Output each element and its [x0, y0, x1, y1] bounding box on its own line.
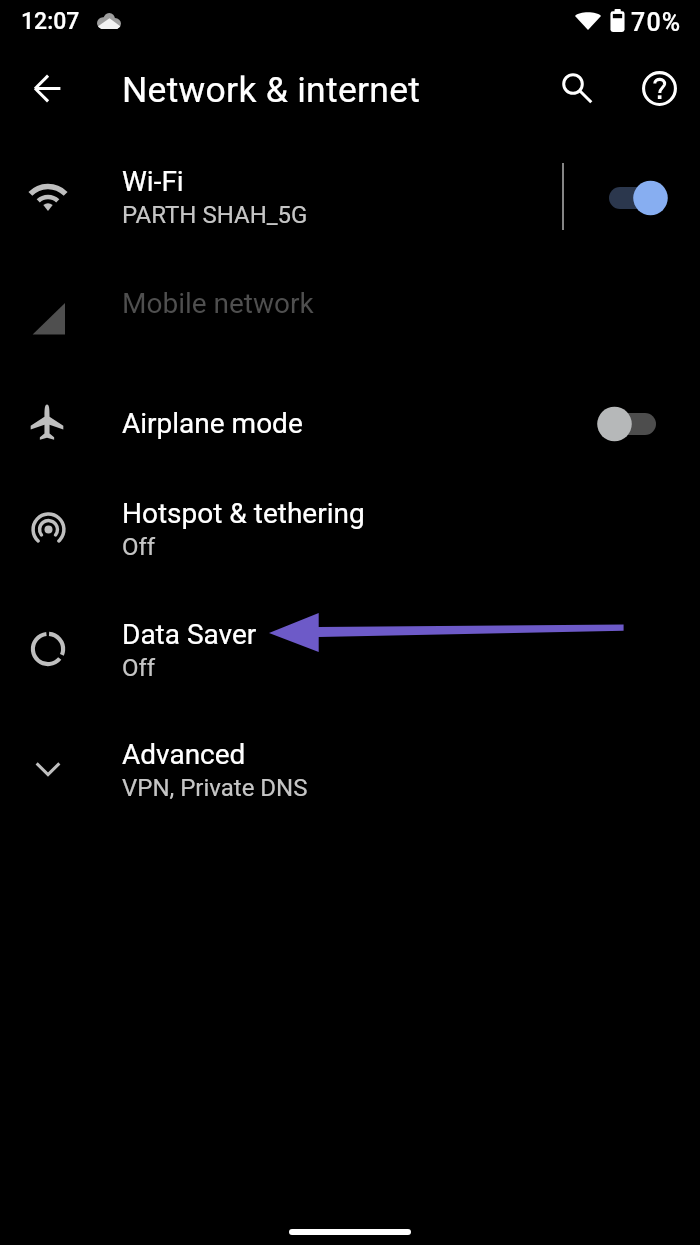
button[interactable]: Navigate up [19, 60, 75, 116]
button[interactable]: Data Saver [0, 590, 700, 711]
staticText: 70% [631, 8, 682, 37]
staticText: VPN, Private DNS [122, 771, 308, 803]
button[interactable]: Mobile network [0, 259, 700, 380]
button[interactable]: Hotspot & tethering [0, 469, 700, 590]
button[interactable]: Switch on [596, 170, 672, 226]
staticText: Off [122, 651, 156, 683]
staticText: Hotspot & tethering [122, 498, 365, 530]
staticText: Off [122, 530, 156, 562]
button[interactable]: Wi-Fi [0, 137, 700, 258]
staticText: Advanced [122, 739, 246, 771]
button[interactable]: Advanced [0, 710, 700, 831]
staticText: Wi-Fi [122, 166, 184, 198]
button[interactable]: Switch off [596, 396, 672, 452]
staticText: Data Saver [122, 619, 257, 651]
staticText: Network & internet [122, 69, 421, 111]
button[interactable]: Search [549, 60, 605, 116]
staticText: 12:07 [21, 8, 80, 35]
button[interactable]: Airplane mode [0, 380, 700, 468]
staticText: Airplane mode [122, 408, 303, 440]
staticText: Mobile network [122, 288, 314, 320]
button[interactable]: Help [631, 60, 687, 116]
staticText: PARTH SHAH_5G [122, 198, 308, 230]
